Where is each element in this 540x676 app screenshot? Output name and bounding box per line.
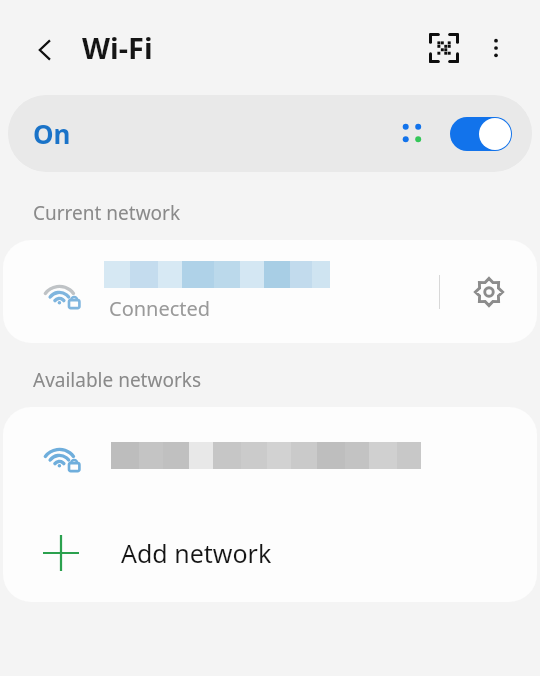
- button[interactable]: Wi-Fi on: [450, 117, 512, 151]
- staticText: On: [33, 116, 71, 151]
- button[interactable]: [3, 407, 537, 503]
- staticText: Available networks: [33, 367, 201, 393]
- button[interactable]: More options: [470, 22, 522, 74]
- staticText: Wi-Fi: [82, 28, 153, 67]
- button[interactable]: Scan QR code: [418, 22, 470, 74]
- staticText: Add network: [121, 536, 272, 570]
- button[interactable]: Network settings: [440, 240, 537, 343]
- staticText: Current network: [33, 200, 181, 226]
- staticText: Connected: [109, 295, 211, 322]
- button[interactable]: Connected: [3, 240, 537, 343]
- button[interactable]: On: [8, 95, 532, 172]
- button[interactable]: Back: [20, 25, 70, 75]
- button[interactable]: Add network: [3, 503, 537, 602]
